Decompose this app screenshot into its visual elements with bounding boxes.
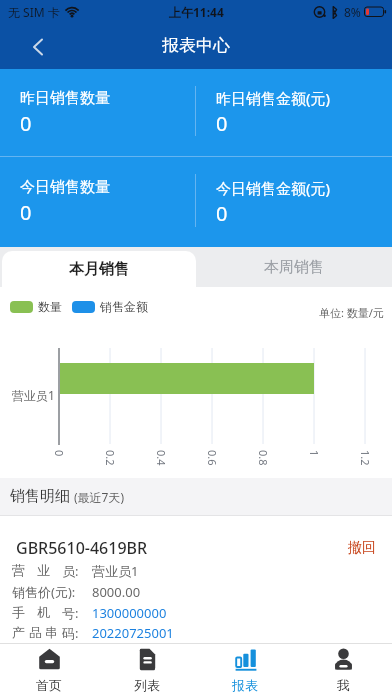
button[interactable]: 昨日销售金额(元) bbox=[196, 69, 392, 156]
staticText: 业 bbox=[37, 562, 50, 578]
button[interactable]: 今日销售数量 bbox=[0, 157, 195, 247]
staticText: GBR5610-4619BR bbox=[16, 537, 148, 559]
button[interactable]: 撤回 bbox=[348, 539, 376, 557]
staticText: 首页 bbox=[36, 677, 62, 693]
staticText: 数量 bbox=[38, 299, 62, 314]
staticText: 昨日销售数量 bbox=[20, 89, 110, 108]
staticText: 昨日销售金额(元) bbox=[216, 88, 331, 108]
staticText: 销售价(元): bbox=[12, 583, 76, 601]
staticText: 0 bbox=[20, 110, 32, 137]
staticText: 今日销售金额(元) bbox=[216, 178, 331, 198]
staticText: 码: bbox=[62, 624, 79, 642]
button[interactable]: 昨日销售数量 bbox=[0, 69, 195, 156]
staticText: 0 bbox=[216, 200, 228, 227]
staticText: 报表中心 bbox=[162, 35, 230, 56]
staticText: 8% bbox=[344, 4, 361, 20]
staticText: 0 bbox=[20, 199, 32, 226]
staticText: 机 bbox=[37, 604, 50, 620]
staticText: 员: bbox=[62, 562, 79, 580]
button[interactable]: 本周销售 bbox=[196, 247, 392, 287]
button[interactable]: 今日销售金额(元) bbox=[196, 157, 392, 247]
staticText: 号: bbox=[62, 604, 79, 622]
staticText: 0 bbox=[216, 110, 228, 137]
staticText: 产 bbox=[12, 624, 25, 640]
staticText: (最近7天) bbox=[74, 489, 125, 505]
button[interactable]: GBR5610-4619BR bbox=[0, 516, 392, 643]
staticText: 报表 bbox=[232, 677, 258, 693]
staticText: 1300000000 bbox=[92, 604, 167, 622]
staticText: 上午11:44 bbox=[169, 4, 224, 20]
button[interactable]: 报表 bbox=[196, 644, 294, 696]
button[interactable] bbox=[22, 31, 54, 63]
staticText: 20220725001 bbox=[92, 624, 174, 642]
button[interactable]: 列表 bbox=[98, 644, 196, 696]
staticText: 销售明细 bbox=[10, 487, 70, 506]
button[interactable]: 我 bbox=[294, 644, 392, 696]
staticText: 本周销售 bbox=[264, 258, 324, 277]
staticText: 串 bbox=[45, 624, 58, 640]
staticText: 今日销售数量 bbox=[20, 178, 110, 197]
button[interactable]: 首页 bbox=[0, 644, 98, 696]
staticText: 单位: 数量/元 bbox=[319, 305, 384, 320]
staticText: 本月销售 bbox=[69, 260, 129, 279]
staticText: 无 SIM 卡 bbox=[8, 4, 60, 20]
button[interactable]: 本月销售 bbox=[2, 251, 196, 287]
staticText: 销售金额 bbox=[100, 299, 148, 314]
staticText: 8000.00 bbox=[92, 583, 141, 601]
staticText: 营 bbox=[12, 562, 25, 578]
staticText: 手 bbox=[12, 604, 25, 620]
staticText: 我 bbox=[337, 677, 350, 693]
staticText: 营业员1 bbox=[92, 562, 139, 580]
staticText: 列表 bbox=[134, 677, 160, 693]
staticText: 品 bbox=[29, 624, 42, 640]
